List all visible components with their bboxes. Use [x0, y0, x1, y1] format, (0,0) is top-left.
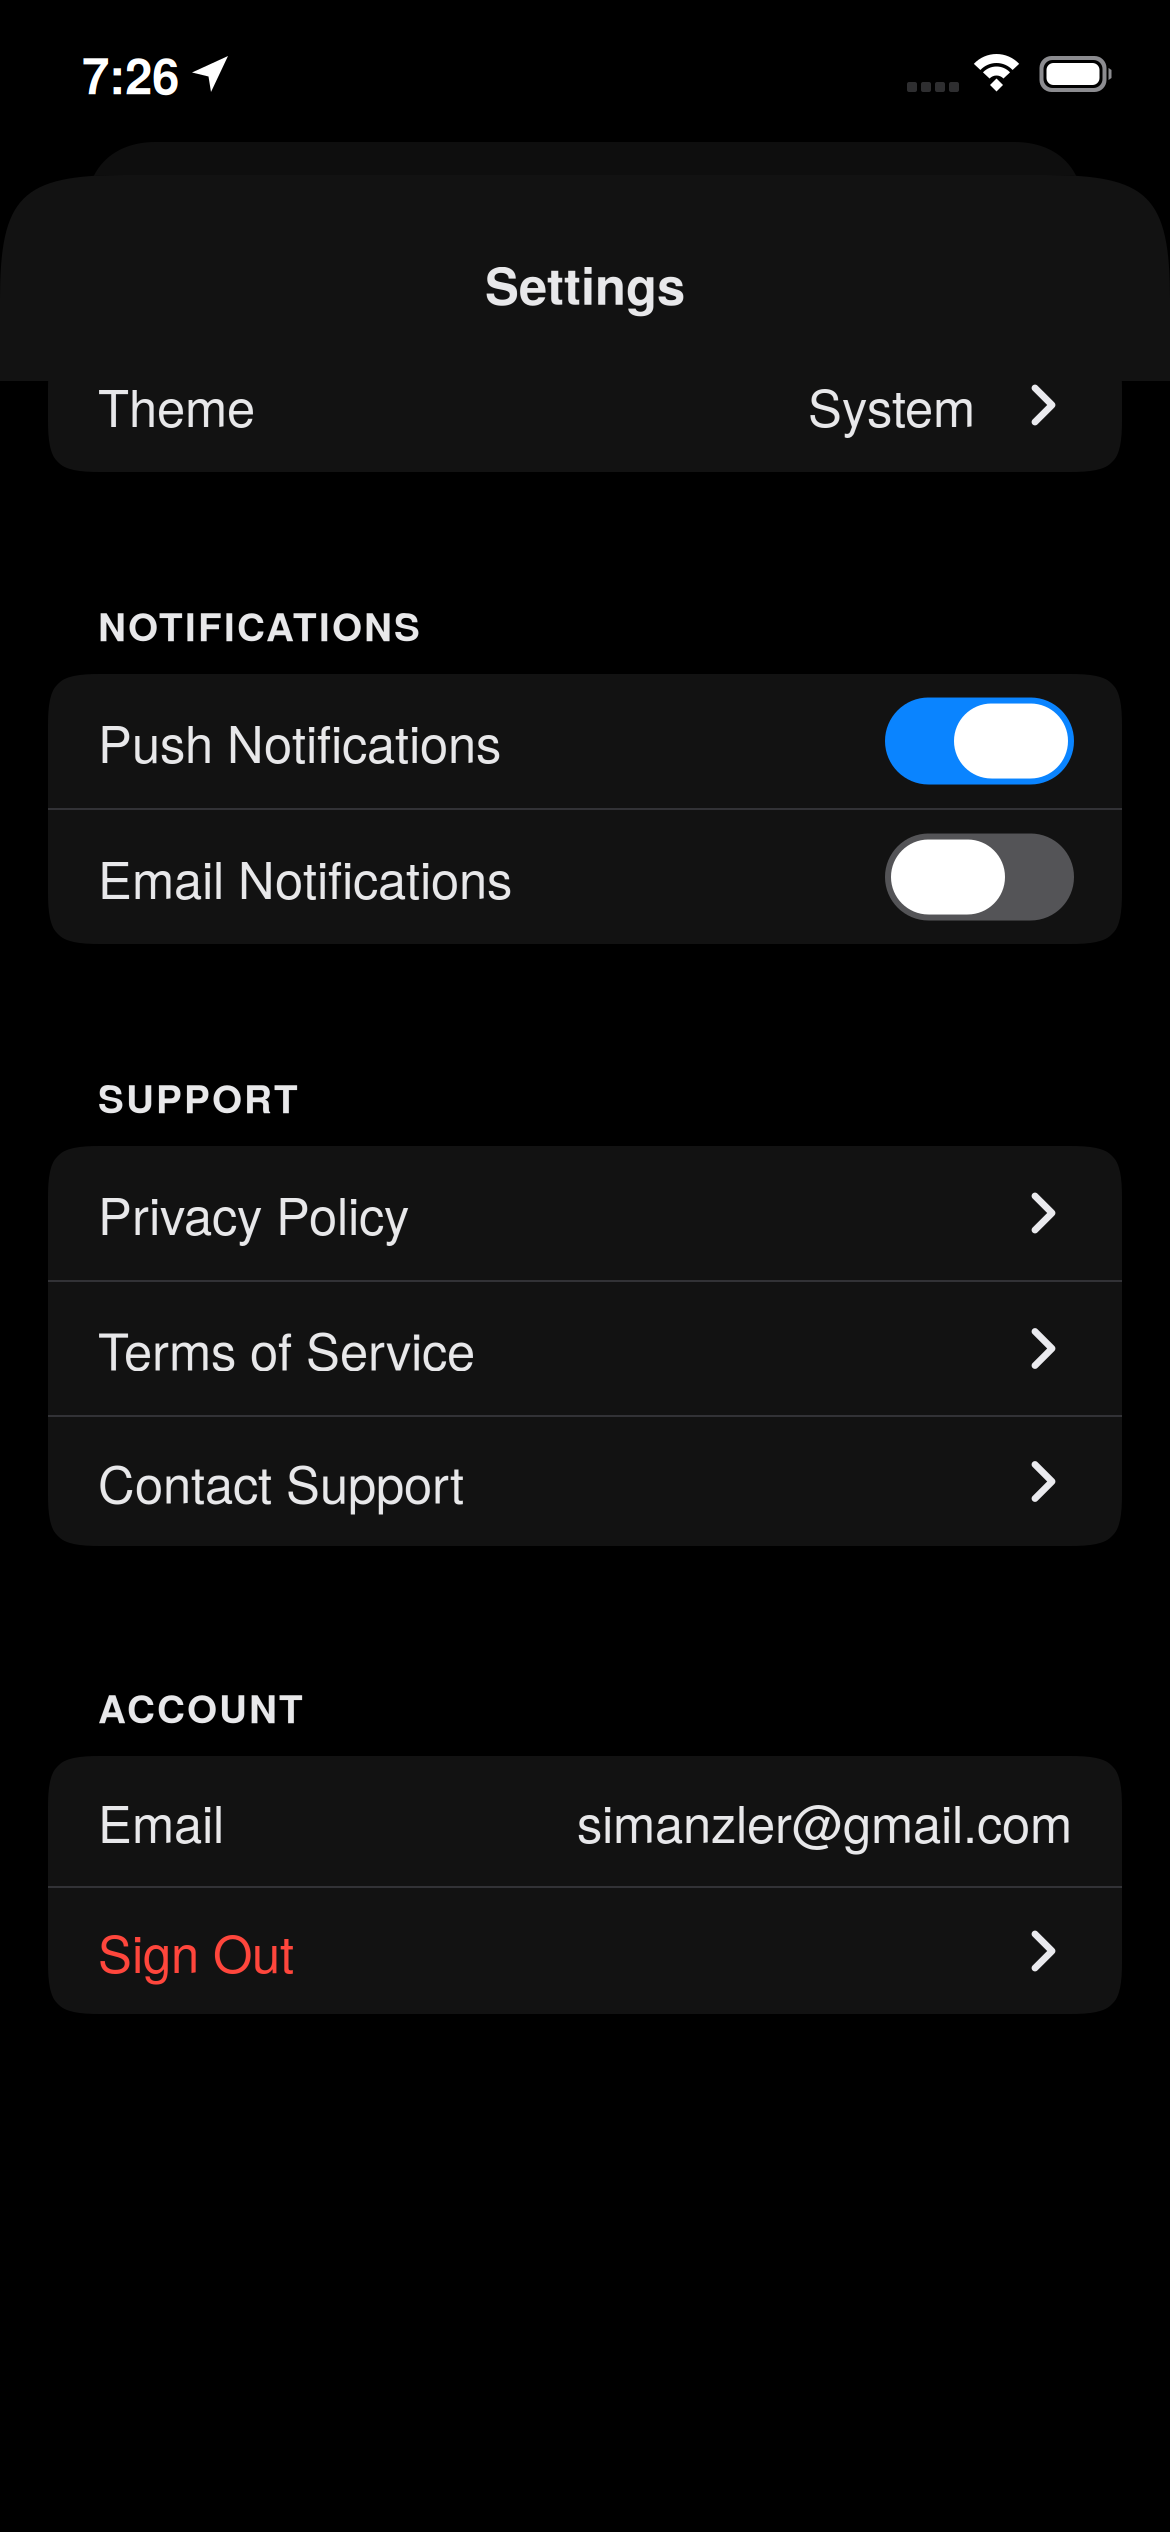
staticText: Theme	[98, 369, 255, 441]
button[interactable]: Privacy Policy	[48, 1146, 1122, 1280]
staticText: Push Notifications	[98, 705, 501, 777]
staticText: SUPPORT	[98, 1070, 298, 1125]
staticText: Privacy Policy	[98, 1177, 409, 1249]
staticText: Email Notifications	[98, 841, 512, 913]
staticText: Contact Support	[98, 1445, 464, 1518]
staticText: NOTIFICATIONS	[98, 598, 420, 653]
button[interactable]: Push Notifications	[48, 674, 1122, 808]
staticText: System	[808, 369, 975, 441]
staticText: Sign Out	[98, 1915, 294, 1987]
button[interactable]: Email Notifications	[48, 810, 1122, 944]
staticText: Terms of Service	[98, 1312, 475, 1385]
staticText: Email	[98, 1785, 224, 1857]
staticText: Settings	[485, 248, 685, 320]
button[interactable]: Contact Support	[48, 1417, 1122, 1546]
button[interactable]: Terms of Service	[48, 1282, 1122, 1415]
button[interactable]: Theme	[48, 338, 1122, 472]
staticText: simanzler@gmail.com	[577, 1785, 1072, 1857]
staticText: ACCOUNT	[98, 1680, 303, 1735]
staticText: 7:26	[82, 39, 179, 109]
button[interactable]: Sign Out	[48, 1888, 1122, 2014]
